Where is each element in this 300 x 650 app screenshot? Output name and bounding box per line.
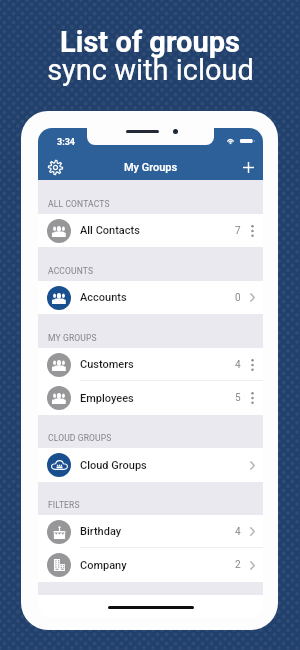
button[interactable]: Accounts xyxy=(38,281,263,314)
staticText: Employees xyxy=(80,392,134,405)
staticText: 2 xyxy=(235,559,241,571)
staticText: 4 xyxy=(235,526,241,538)
staticText: 5 xyxy=(235,392,241,404)
staticText: List of groups xyxy=(60,25,240,59)
staticText: Birthday xyxy=(80,525,122,538)
button[interactable]: Employees xyxy=(38,381,263,415)
button[interactable]: Company xyxy=(38,548,263,582)
staticText: ALL CONTACTS xyxy=(48,199,110,209)
button[interactable]: All Contacts xyxy=(38,214,263,247)
staticText: 4 xyxy=(235,359,241,371)
staticText: My Groups xyxy=(124,161,178,174)
staticText: Customers xyxy=(80,358,134,371)
button[interactable]: Add group xyxy=(237,156,259,178)
staticText: sync with icloud xyxy=(47,53,254,87)
button[interactable]: Birthday xyxy=(38,515,263,548)
staticText: MY GROUPS xyxy=(48,333,97,343)
staticText: Company xyxy=(80,559,127,572)
staticText: Cloud Groups xyxy=(80,459,147,472)
staticText: Accounts xyxy=(80,291,127,304)
staticText: 3:34 xyxy=(57,137,76,148)
staticText: ACCOUNTS xyxy=(48,266,94,276)
button[interactable]: Cloud Groups xyxy=(38,448,263,482)
staticText: 7 xyxy=(235,225,241,237)
staticText: CLOUD GROUPS xyxy=(48,433,112,443)
staticText: 0 xyxy=(235,292,241,304)
button[interactable]: Customers xyxy=(38,348,263,381)
staticText: All Contacts xyxy=(80,224,140,237)
staticText: FILTERS xyxy=(48,500,80,510)
button[interactable]: Settings xyxy=(44,156,66,178)
